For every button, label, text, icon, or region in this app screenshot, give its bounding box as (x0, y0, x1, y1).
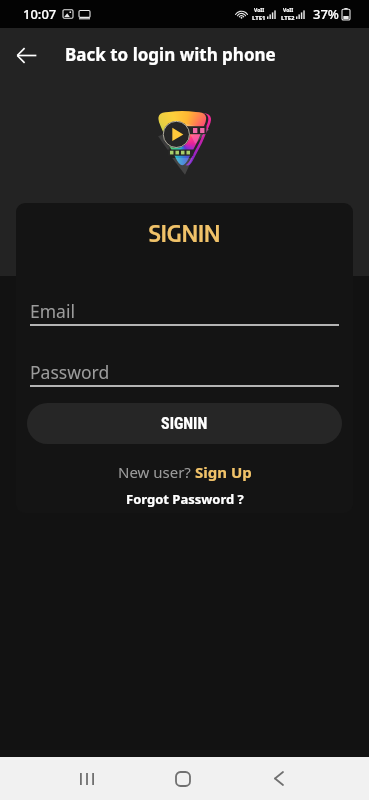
button[interactable]: Recents (65, 757, 109, 800)
button[interactable]: Home (161, 757, 205, 800)
button[interactable]: Forgot Password ? (16, 490, 353, 508)
staticText: SIGNIN (16, 218, 353, 247)
staticText: LTE2 (281, 14, 295, 22)
staticText: Email (30, 299, 75, 323)
button[interactable]: Password (30, 360, 339, 387)
staticText: VoII (254, 7, 265, 14)
staticText: New user? (118, 462, 195, 482)
staticText: Sign Up (195, 462, 252, 482)
staticText: Password (30, 360, 110, 384)
staticText: 37% (313, 5, 339, 23)
staticText: Forgot Password ? (126, 490, 244, 508)
button[interactable]: Back (257, 757, 301, 800)
staticText: LTE1 (252, 14, 266, 22)
button[interactable]: SIGNIN (27, 403, 342, 444)
staticText: SIGNIN (161, 414, 208, 433)
staticText: Back to login with phone (65, 43, 276, 66)
staticText: 10:07 (23, 5, 57, 23)
button[interactable]: Back (5, 34, 47, 76)
button[interactable]: Email (30, 299, 339, 326)
button[interactable]: Sign Up (195, 462, 252, 482)
staticText: VoII (283, 7, 294, 14)
